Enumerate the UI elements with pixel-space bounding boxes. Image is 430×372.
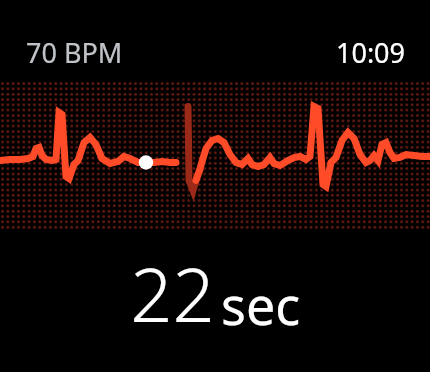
button[interactable]: 22 <box>0 228 430 372</box>
staticText: sec <box>221 269 301 340</box>
staticText: 70 BPM <box>26 34 123 71</box>
staticText: 10:09 <box>336 34 406 71</box>
staticText: 22 <box>130 243 215 344</box>
button[interactable]: ECG waveform <box>0 81 430 228</box>
button[interactable]: 70 BPM <box>26 34 123 71</box>
